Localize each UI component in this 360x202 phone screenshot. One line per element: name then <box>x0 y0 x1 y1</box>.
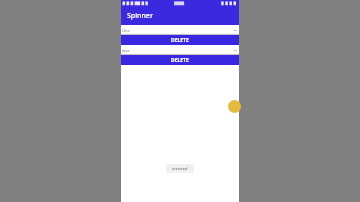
button[interactable]: DELETE <box>121 55 239 65</box>
button[interactable]: One <box>121 25 239 35</box>
staticText: inserted <box>172 166 188 171</box>
staticText: One <box>122 28 130 33</box>
staticText: DELETE <box>171 57 189 64</box>
button[interactable]: Floating marker <box>228 100 241 113</box>
button[interactable]: Java <box>121 45 239 55</box>
staticText: Java <box>122 48 130 53</box>
button[interactable]: DELETE <box>121 35 239 45</box>
staticText: DELETE <box>171 37 189 44</box>
staticText: Spinner <box>127 11 153 21</box>
